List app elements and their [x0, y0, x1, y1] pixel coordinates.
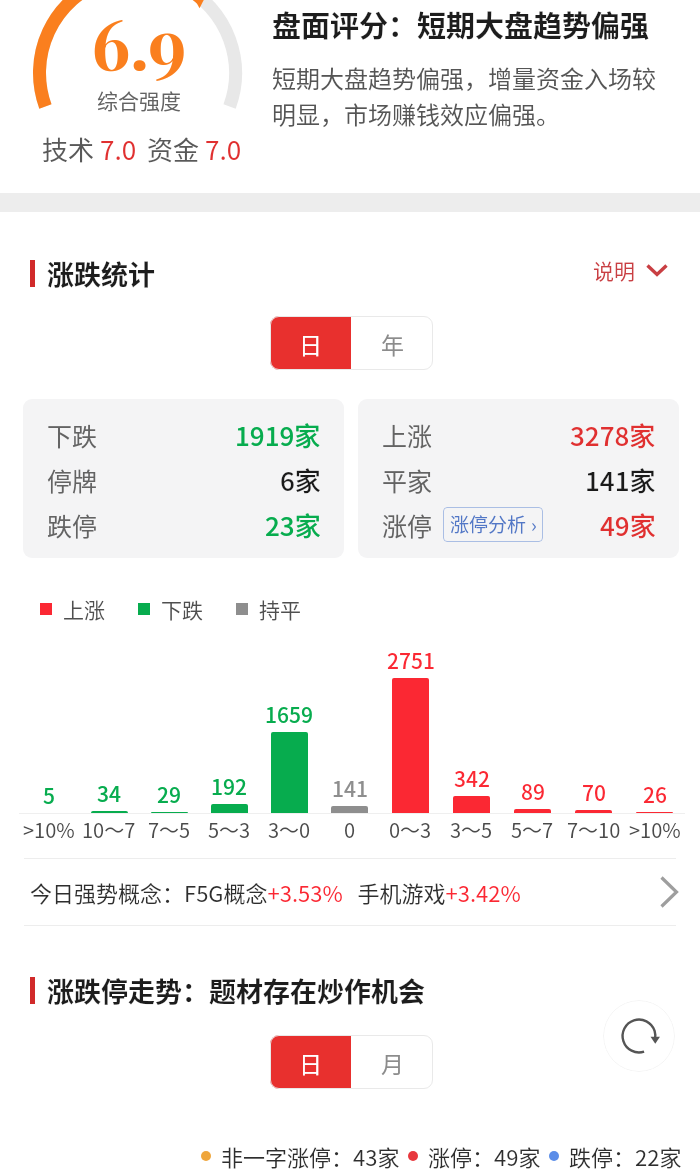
staticText: 日 — [299, 1046, 322, 1079]
staticText: 6家 — [280, 461, 321, 499]
staticText: 49家 — [600, 506, 656, 544]
staticText: 短期大盘趋势偏强，增量资金入场较明显，市场赚钱效应偏强。 — [272, 60, 672, 131]
button[interactable]: 年 — [351, 316, 433, 370]
staticText: 1919家 — [235, 416, 321, 454]
staticText: 跌停 — [47, 507, 98, 543]
staticText: 0 — [344, 815, 356, 844]
staticText: 涨停：49家 — [428, 1140, 541, 1171]
staticText: 平家 — [382, 462, 433, 498]
staticText: >10% — [629, 815, 681, 844]
staticText: 涨跌停走势：题材存在炒作机会 — [47, 971, 425, 1010]
button[interactable]: Refresh — [603, 1000, 675, 1072]
staticText: 上涨 — [382, 417, 433, 453]
staticText: 141家 — [585, 461, 656, 499]
staticText: 下跌 — [47, 417, 98, 453]
staticText: 涨停分析 — [450, 510, 527, 538]
staticText: >10% — [23, 815, 75, 844]
staticText: 涨停 — [382, 507, 433, 543]
staticText: › — [531, 510, 537, 538]
staticText: 89 — [521, 776, 545, 806]
staticText: 26 — [643, 779, 667, 809]
staticText: 年 — [381, 327, 404, 360]
staticText: 资金 — [147, 130, 200, 168]
staticText: 日 — [299, 327, 322, 360]
button[interactable]: 月 — [351, 1035, 433, 1089]
staticText: 3～0 — [268, 815, 311, 844]
staticText: 1659 — [265, 699, 313, 729]
staticText: 23家 — [265, 506, 321, 544]
staticText: 说明 — [593, 255, 635, 285]
staticText: 停牌 — [47, 462, 98, 498]
button[interactable]: 日 — [270, 1035, 351, 1089]
staticText: 技术 — [42, 130, 95, 168]
staticText: 3278家 — [570, 416, 656, 454]
staticText: 今日强势概念：F5G概念+3.53% 手机游戏+3.42% — [30, 876, 521, 908]
staticText: 342 — [454, 763, 490, 793]
staticText: 上涨 — [63, 594, 105, 624]
staticText: 跌停：22家 — [569, 1140, 682, 1171]
staticText: 10～7 — [82, 815, 136, 844]
staticText: 7.0 — [100, 130, 137, 168]
staticText: 29 — [157, 779, 181, 809]
staticText: 5～7 — [511, 815, 554, 844]
staticText: 综合强度 — [39, 85, 239, 115]
staticText: 2751 — [387, 645, 435, 675]
staticText: 192 — [211, 771, 247, 801]
staticText: 141 — [332, 773, 368, 803]
staticText: 持平 — [259, 594, 301, 624]
staticText: 5～3 — [208, 815, 251, 844]
staticText: 3～5 — [450, 815, 493, 844]
button[interactable]: 说明 — [593, 255, 668, 285]
staticText: 6.9 — [39, 0, 239, 87]
staticText: 涨跌统计 — [47, 254, 155, 293]
staticText: 70 — [582, 777, 606, 807]
staticText: 0～3 — [389, 815, 432, 844]
staticText: 7～5 — [148, 815, 191, 844]
button[interactable]: 日 — [270, 316, 351, 370]
staticText: 7～10 — [567, 815, 621, 844]
staticText: 5 — [43, 780, 55, 810]
staticText: 非一字涨停：43家 — [221, 1140, 400, 1171]
staticText: 34 — [97, 778, 121, 808]
staticText: 月 — [381, 1046, 404, 1079]
staticText: 盘面评分：短期大盘趋势偏强 — [272, 3, 650, 45]
button[interactable]: 今日强势概念：F5G概念+3.53% 手机游戏+3.42% — [0, 859, 700, 925]
button[interactable]: 涨停分析 — [443, 507, 543, 542]
staticText: 下跌 — [161, 594, 203, 624]
staticText: 7.0 — [205, 130, 242, 168]
